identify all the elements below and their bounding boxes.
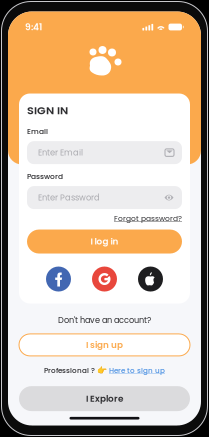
staticText: 9:41 (25, 21, 42, 33)
staticText: Professional ? (44, 365, 95, 376)
button[interactable]: I sign up (19, 334, 190, 356)
staticText: I sign up (86, 339, 123, 351)
button[interactable]: Here to sign up (109, 365, 165, 376)
staticText: I log in (90, 235, 118, 248)
button[interactable]: Sign in with Apple (138, 266, 163, 291)
staticText: SIGN IN (27, 102, 68, 118)
staticText: 👉 (95, 365, 109, 376)
button[interactable]: I log in (27, 229, 182, 253)
staticText: Enter Email (38, 147, 83, 158)
button[interactable]: Sign in with Facebook (46, 266, 71, 291)
staticText: Here to sign up (109, 365, 165, 376)
button[interactable]: I Explore (19, 386, 190, 411)
staticText: Don't have an account? (58, 314, 151, 326)
button[interactable]: Sign in with Google (92, 266, 117, 291)
staticText: Forgot password? (114, 213, 182, 224)
staticText: Password (27, 171, 63, 182)
staticText: Enter Password (38, 192, 100, 203)
staticText: I Explore (86, 392, 123, 405)
button[interactable]: Forgot password? (114, 213, 182, 224)
staticText: Email (27, 126, 48, 137)
